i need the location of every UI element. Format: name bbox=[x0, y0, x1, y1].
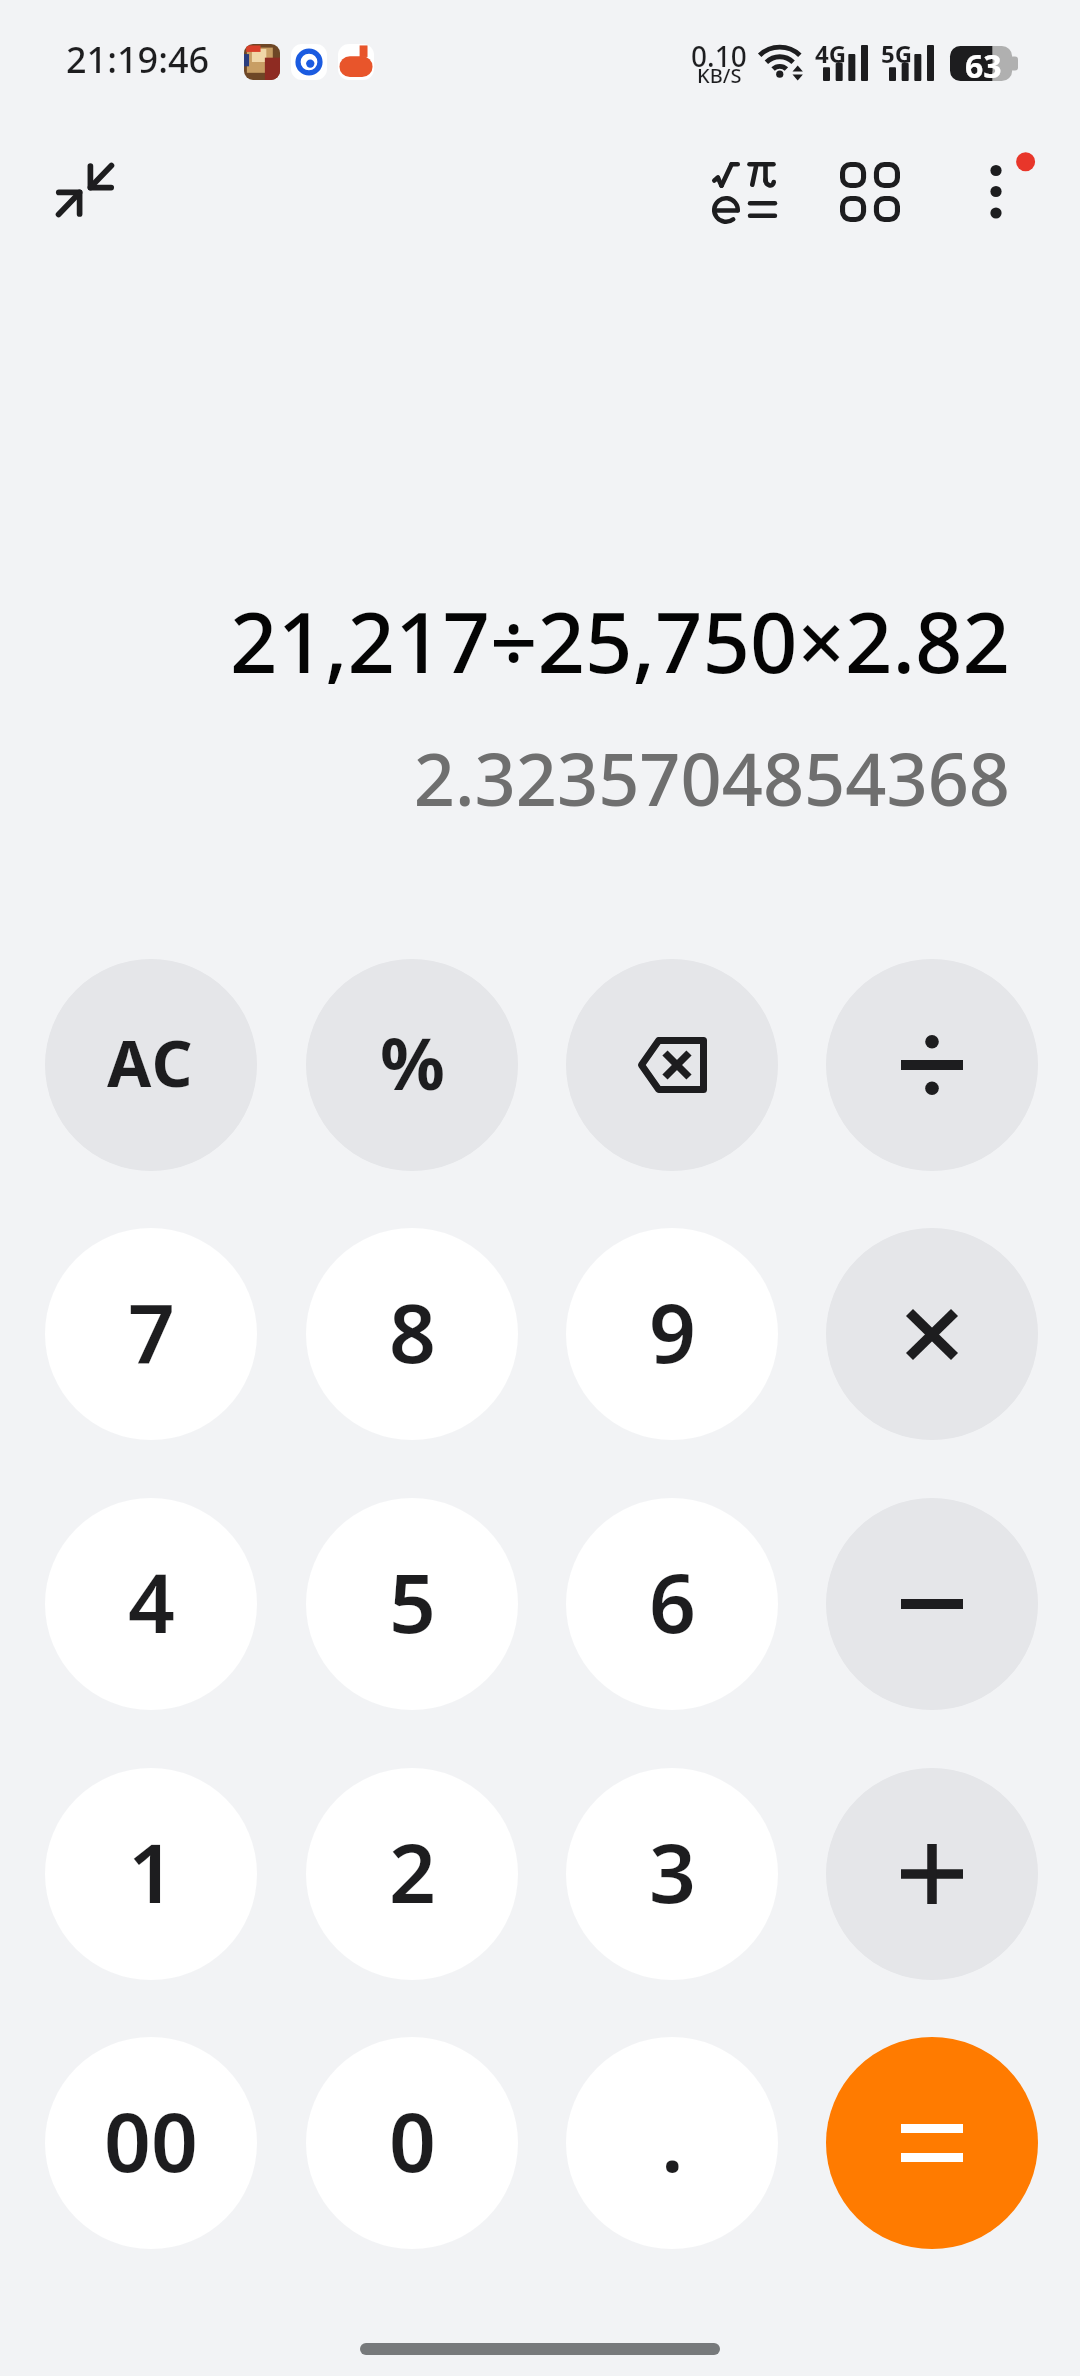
button[interactable]: 9 bbox=[566, 1228, 778, 1440]
button[interactable]: 6 bbox=[566, 1498, 778, 1710]
button[interactable]: AC bbox=[45, 959, 257, 1171]
button[interactable]: Multiply bbox=[826, 1228, 1038, 1440]
staticText: 2.3235704854368 bbox=[413, 729, 1010, 827]
button[interactable]: 8 bbox=[306, 1228, 518, 1440]
button[interactable]: More options bbox=[956, 140, 1048, 232]
staticText: AC bbox=[107, 1019, 195, 1106]
staticText: 4 bbox=[128, 1545, 175, 1657]
staticText: 8 bbox=[389, 1275, 436, 1387]
button[interactable]: 0 bbox=[306, 2037, 518, 2249]
button[interactable]: Collapse bbox=[38, 143, 132, 237]
button[interactable]: Backspace bbox=[566, 959, 778, 1171]
button[interactable]: Plus bbox=[826, 1768, 1038, 1980]
staticText: 1 bbox=[128, 1815, 175, 1927]
staticText: 5 bbox=[389, 1545, 436, 1657]
button[interactable]: Divide bbox=[826, 959, 1038, 1171]
button[interactable]: Apps bbox=[820, 142, 920, 242]
button[interactable]: . bbox=[566, 2037, 778, 2249]
staticText: 21,217÷25,750×2.82 bbox=[229, 584, 1010, 697]
staticText: 63 bbox=[965, 44, 1002, 88]
staticText: 2 bbox=[389, 1815, 436, 1927]
staticText: 6 bbox=[649, 1545, 696, 1657]
button[interactable]: 4 bbox=[45, 1498, 257, 1710]
button[interactable]: 3 bbox=[566, 1768, 778, 1980]
staticText: . bbox=[661, 2084, 684, 2196]
button[interactable]: Scientific bbox=[692, 142, 796, 244]
button[interactable]: 1 bbox=[45, 1768, 257, 1980]
button[interactable]: 2 bbox=[306, 1768, 518, 1980]
button[interactable]: Equals bbox=[826, 2037, 1038, 2249]
button[interactable]: 5 bbox=[306, 1498, 518, 1710]
staticText: 0 bbox=[389, 2084, 436, 2196]
staticText: 9 bbox=[649, 1275, 696, 1387]
staticText: % bbox=[380, 1013, 445, 1111]
staticText: 5G bbox=[881, 37, 913, 70]
staticText: 0.10 bbox=[691, 37, 747, 75]
staticText: 4G bbox=[815, 37, 847, 70]
staticText: KB/S bbox=[697, 62, 742, 89]
button[interactable]: 00 bbox=[45, 2037, 257, 2249]
button[interactable]: Minus bbox=[826, 1498, 1038, 1710]
staticText: 21:19:46 bbox=[66, 35, 210, 84]
button[interactable]: 7 bbox=[45, 1228, 257, 1440]
button[interactable]: % bbox=[306, 959, 518, 1171]
staticText: 7 bbox=[128, 1275, 175, 1387]
staticText: 3 bbox=[649, 1815, 696, 1927]
staticText: 00 bbox=[104, 2084, 198, 2196]
